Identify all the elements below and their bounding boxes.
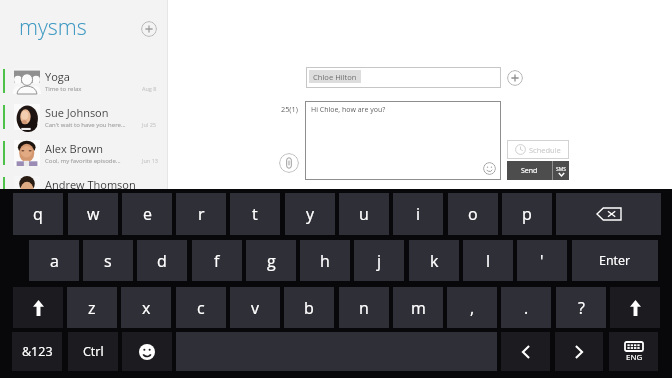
staticText: &123: [22, 343, 53, 360]
button[interactable]: New message: [141, 21, 157, 37]
staticText: g: [267, 250, 276, 272]
button[interactable]: s: [83, 240, 133, 281]
button[interactable]: j: [354, 240, 404, 281]
button[interactable]: l: [463, 240, 513, 281]
button[interactable]: y: [285, 193, 335, 235]
staticText: Yoga: [45, 69, 70, 84]
button[interactable]: Yoga: [0, 68, 168, 100]
staticText: r: [198, 203, 205, 225]
staticText: k: [430, 250, 439, 272]
button[interactable]: SMS options: [553, 161, 569, 180]
button[interactable]: d: [137, 240, 187, 281]
button[interactable]: v: [230, 287, 280, 328]
button[interactable]: Schedule: [507, 140, 569, 159]
staticText: q: [33, 203, 43, 225]
staticText: p: [522, 203, 532, 225]
button[interactable]: u: [339, 193, 389, 235]
button[interactable]: o: [448, 193, 498, 235]
staticText: u: [359, 203, 369, 225]
button[interactable]: Sue Johnson: [0, 104, 168, 136]
staticText: Aug 8: [142, 85, 157, 92]
button[interactable]: f: [192, 240, 242, 281]
button[interactable]: m: [393, 287, 443, 328]
button[interactable]: Attach: [279, 153, 299, 173]
button[interactable]: p: [502, 193, 552, 235]
staticText: Sue Johnson: [45, 105, 109, 120]
staticText: v: [251, 297, 259, 319]
button[interactable]: ?: [556, 287, 606, 328]
staticText: Hi Chloe, how are you?: [311, 105, 386, 115]
button[interactable]: Send: [507, 161, 552, 180]
staticText: ?: [578, 297, 585, 319]
button[interactable]: i: [393, 193, 443, 235]
button[interactable]: &123: [12, 332, 62, 371]
staticText: SMS: [556, 166, 566, 173]
button[interactable]: Emoji: [483, 162, 496, 175]
button[interactable]: Enter: [572, 240, 658, 281]
button[interactable]: c: [176, 287, 226, 328]
button[interactable]: a: [29, 240, 79, 281]
button[interactable]: z: [67, 287, 117, 328]
staticText: Jun 13: [142, 157, 158, 164]
staticText: j: [377, 250, 382, 272]
staticText: ': [540, 250, 544, 272]
staticText: Schedule: [529, 145, 561, 155]
button[interactable]: q: [13, 193, 63, 235]
button[interactable]: Change keyboard language: [609, 332, 658, 371]
staticText: x: [142, 297, 151, 319]
staticText: t: [252, 203, 258, 225]
button[interactable]: g: [246, 240, 296, 281]
button[interactable]: h: [300, 240, 350, 281]
staticText: 25(1): [281, 104, 298, 114]
button[interactable]: Shift: [610, 287, 660, 328]
button[interactable]: e: [122, 193, 172, 235]
button[interactable]: .: [501, 287, 551, 328]
staticText: Can't wait to have you here...: [45, 121, 141, 129]
staticText: Enter: [599, 252, 631, 269]
staticText: o: [468, 203, 478, 225]
staticText: n: [359, 297, 369, 319]
button[interactable]: k: [409, 240, 459, 281]
staticText: h: [320, 250, 330, 272]
button[interactable]: b: [284, 287, 334, 328]
button[interactable]: Ctrl: [68, 332, 118, 371]
button[interactable]: Next: [555, 332, 603, 371]
staticText: w: [87, 203, 100, 225]
button[interactable]: Emoji: [122, 332, 172, 371]
button[interactable]: x: [121, 287, 171, 328]
staticText: a: [50, 250, 59, 272]
button[interactable]: ': [517, 240, 567, 281]
staticText: d: [157, 250, 167, 272]
button[interactable]: n: [339, 287, 389, 328]
staticText: Alex Brown: [45, 141, 104, 156]
staticText: s: [104, 250, 112, 272]
button[interactable]: t: [230, 193, 280, 235]
button[interactable]: ,: [447, 287, 497, 328]
staticText: y: [306, 203, 315, 225]
button[interactable]: Shift: [13, 287, 63, 328]
button[interactable]: r: [176, 193, 226, 235]
staticText: i: [416, 203, 421, 225]
staticText: b: [304, 297, 314, 319]
staticText: f: [214, 250, 220, 272]
staticText: Send: [521, 166, 538, 176]
button[interactable]: Previous: [501, 332, 550, 371]
staticText: c: [197, 297, 205, 319]
staticText: .: [524, 297, 529, 319]
staticText: e: [143, 203, 152, 225]
staticText: Ctrl: [83, 343, 104, 360]
button[interactable]: w: [68, 193, 118, 235]
button[interactable]: Add recipient: [507, 70, 523, 86]
button[interactable]: Alex Brown: [0, 140, 168, 172]
button[interactable]: Andrew Thomson: [0, 176, 168, 189]
staticText: Cool, my favorite episode...: [45, 157, 141, 165]
staticText: m: [411, 297, 426, 319]
button[interactable]: Backspace: [556, 193, 661, 235]
staticText: Jul 25: [142, 121, 156, 128]
staticText: mysms: [19, 12, 87, 41]
staticText: l: [486, 250, 491, 272]
staticText: ,: [470, 297, 475, 319]
staticText: ENG: [626, 351, 643, 362]
staticText: Chloe Hilton: [313, 72, 357, 82]
